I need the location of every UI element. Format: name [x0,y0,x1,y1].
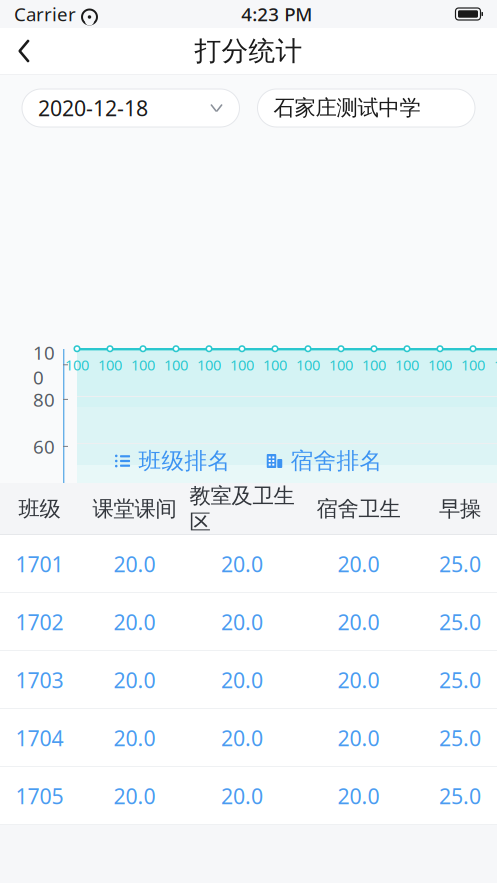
button[interactable]: 2020-12-18 [22,89,239,127]
staticText: 25.0 [439,782,481,810]
staticText: 1702 [15,608,63,636]
button[interactable]: 1704 [0,709,497,767]
staticText: 班级排名 [138,447,230,475]
button[interactable]: 班级排名 [114,439,230,483]
button[interactable]: Back [0,28,48,74]
staticText: 25.0 [439,666,481,694]
staticText: 100 [65,355,89,374]
staticText: 100 [428,355,452,374]
staticText: 2020-12-18 [38,94,148,122]
button[interactable]: 1701 [0,535,497,593]
staticText: 宿舍卫生 [316,496,400,522]
staticText: 4:23 PM [241,2,312,26]
staticText: 25.0 [439,724,481,752]
staticText: 100 [395,355,419,374]
staticText: 宿舍排名 [290,447,382,475]
staticText: 20.0 [113,666,155,694]
staticText: 1701 [15,550,63,578]
button[interactable]: 1703 [0,651,497,709]
staticText: 20.0 [337,724,379,752]
staticText: 班级 [18,496,60,522]
staticText: 60 [33,434,55,459]
staticText: 20.0 [221,550,263,578]
staticText: 20.0 [113,550,155,578]
staticText: 20.0 [113,782,155,810]
staticText: 100 [164,355,188,374]
button[interactable]: 石家庄测试中学 [257,89,475,127]
staticText: Carrier [14,2,76,26]
staticText: 1703 [15,666,63,694]
staticText: 早操 [439,496,481,522]
staticText: 100 [197,355,221,374]
staticText: 80 [33,387,55,412]
staticText: 100 [131,355,155,374]
staticText: 20.0 [337,782,379,810]
staticText: 0 [44,574,55,599]
staticText: 100 [362,355,386,374]
button[interactable]: 1705 [0,767,497,825]
staticText: 20.0 [113,608,155,636]
staticText: 100 [33,340,55,390]
staticText: 25.0 [439,550,481,578]
staticText: 20.0 [221,666,263,694]
staticText: 20.0 [221,782,263,810]
staticText: 20 [33,527,55,552]
staticText: 1704 [15,724,63,752]
staticText: 100 [329,355,353,374]
staticText: 100 [296,355,320,374]
staticText: 100 [494,355,497,374]
staticText: 20.0 [337,550,379,578]
staticText: 25.0 [439,608,481,636]
staticText: 20.0 [337,608,379,636]
staticText: 100 [461,355,485,374]
staticText: 100 [230,355,254,374]
staticText: 打分统计 [194,35,302,67]
staticText: 20.0 [221,608,263,636]
staticText: 40 [33,480,55,505]
staticText: 20.0 [337,666,379,694]
staticText: 20.0 [113,724,155,752]
staticText: 100 [98,355,122,374]
staticText: 课堂课间 [92,496,176,522]
staticText: 100 [263,355,287,374]
button[interactable]: 宿舍排名 [266,439,382,483]
staticText: 石家庄测试中学 [273,95,420,121]
staticText: 1705 [15,782,63,810]
button[interactable]: 1702 [0,593,497,651]
staticText: 教室及卫生区 [189,483,294,535]
staticText: 20.0 [221,724,263,752]
